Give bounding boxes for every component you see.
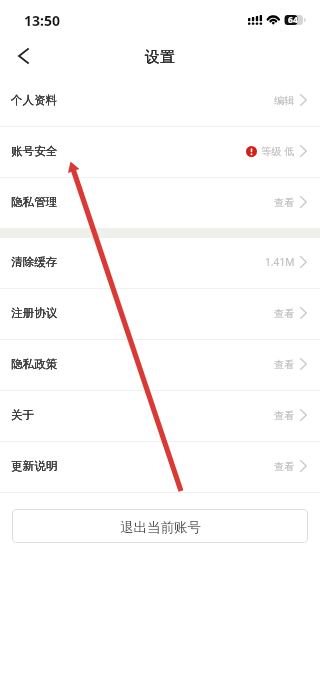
staticText: 账号安全 <box>11 144 58 159</box>
staticText: 隐私管理 <box>11 195 58 210</box>
staticText: 隐私管理 <box>11 195 58 210</box>
staticText: 隐私管理 <box>11 195 58 210</box>
staticText: 关于 <box>11 408 35 423</box>
button[interactable]: 更新说明 <box>0 442 320 492</box>
button[interactable]: 隐私政策 <box>0 340 320 390</box>
staticText: 更新说明 <box>11 459 58 474</box>
staticText: 设置 <box>145 48 175 67</box>
staticText: 隐私政策 <box>11 357 58 372</box>
staticText: 查看 <box>274 196 295 209</box>
staticText: 清除缓存 <box>11 255 58 270</box>
staticText: 个人资料 <box>11 93 58 108</box>
button[interactable]: 注册协议 <box>0 289 320 339</box>
staticText: 关于 <box>11 408 35 423</box>
staticText: 更新说明 <box>11 459 58 474</box>
staticText: 注册协议 <box>11 306 58 321</box>
staticText: 设置 <box>145 48 175 67</box>
staticText: 更新说明 <box>11 459 58 474</box>
staticText: 13:50 <box>24 11 60 30</box>
staticText: 更新说明 <box>11 459 58 474</box>
staticText: 查看 <box>274 358 295 371</box>
staticText: 64 <box>288 14 298 26</box>
staticText: 清除缓存 <box>11 255 58 270</box>
staticText: 查看 <box>274 460 295 473</box>
staticText: 个人资料 <box>11 93 58 108</box>
staticText: 1.41M <box>265 255 295 269</box>
staticText: 隐私政策 <box>11 357 58 372</box>
button[interactable]: 隐私管理 <box>0 178 320 228</box>
staticText: 设置 <box>145 48 175 67</box>
button[interactable]: 个人资料 <box>0 76 320 126</box>
staticText: 注册协议 <box>11 306 58 321</box>
staticText: 个人资料 <box>11 93 58 108</box>
staticText: 账号安全 <box>11 144 58 159</box>
staticText: 清除缓存 <box>11 255 58 270</box>
button[interactable]: 清除缓存 <box>0 238 320 288</box>
button[interactable]: Back <box>0 36 46 76</box>
staticText: 等级 低 <box>261 144 295 158</box>
staticText: 清除缓存 <box>11 255 58 270</box>
button[interactable]: 账号安全 <box>0 127 320 177</box>
staticText: 隐私政策 <box>11 357 58 372</box>
staticText: 账号安全 <box>11 144 58 159</box>
staticText: 隐私管理 <box>11 195 58 210</box>
staticText: 编辑 <box>274 94 295 107</box>
button[interactable]: 退出当前账号 <box>12 509 308 543</box>
staticText: 注册协议 <box>11 306 58 321</box>
staticText: 设置 <box>145 48 175 67</box>
staticText: 退出当前账号 <box>120 519 201 536</box>
staticText: 账号安全 <box>11 144 58 159</box>
button[interactable]: 关于 <box>0 391 320 441</box>
staticText: 个人资料 <box>11 93 58 108</box>
staticText: 关于 <box>11 408 35 423</box>
staticText: 注册协议 <box>11 306 58 321</box>
staticText: 查看 <box>274 307 295 320</box>
staticText: 关于 <box>11 408 35 423</box>
staticText: 隐私政策 <box>11 357 58 372</box>
staticText: 查看 <box>274 409 295 422</box>
